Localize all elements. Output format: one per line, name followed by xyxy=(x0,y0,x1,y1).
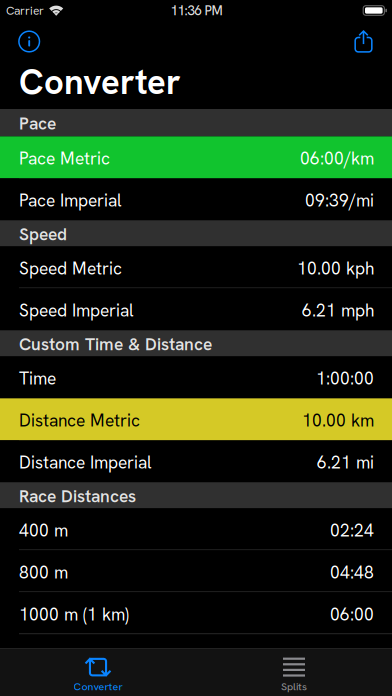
button[interactable]: Info xyxy=(7,21,51,62)
staticText: 10.00 km xyxy=(302,409,374,432)
staticText: 6.21 mph xyxy=(302,299,374,322)
staticText: Splits xyxy=(281,680,307,693)
staticText: Race Distances xyxy=(19,485,136,507)
staticText: 1000 m (1 km) xyxy=(19,603,129,626)
staticText: Distance Metric xyxy=(19,409,140,432)
button[interactable]: Pace Imperial xyxy=(0,178,392,220)
staticText: 11:36 PM xyxy=(170,2,222,19)
staticText: Time xyxy=(19,367,56,390)
staticText: 09:39/mi xyxy=(305,189,374,212)
staticText: Pace xyxy=(19,112,56,135)
button[interactable]: Converter xyxy=(0,649,196,696)
staticText: 06:00 xyxy=(330,603,374,626)
staticText: 10.00 kph xyxy=(297,257,374,280)
staticText: Converter xyxy=(73,680,122,693)
staticText: Custom Time & Distance xyxy=(19,333,212,355)
staticText: 800 m xyxy=(19,561,68,584)
button[interactable]: Splits xyxy=(196,649,392,696)
staticText: 02:24 xyxy=(330,519,374,542)
button[interactable]: Time xyxy=(0,356,392,398)
button[interactable]: Speed Metric xyxy=(0,246,392,288)
button[interactable]: Speed Imperial xyxy=(0,288,392,330)
staticText: Speed Metric xyxy=(19,257,122,280)
button[interactable]: Pace Metric xyxy=(0,136,392,178)
staticText: 6.21 mi xyxy=(317,451,374,474)
button[interactable]: 400 m xyxy=(0,508,392,550)
staticText: Pace Metric xyxy=(19,147,110,170)
staticText: Converter xyxy=(19,59,181,105)
button[interactable]: Distance Imperial xyxy=(0,440,392,482)
staticText: Pace Imperial xyxy=(19,189,122,212)
staticText: Speed xyxy=(19,223,67,245)
staticText: 06:00/km xyxy=(300,147,374,170)
button[interactable]: 1000 m (1 km) xyxy=(0,592,392,634)
button[interactable]: 800 m xyxy=(0,550,392,592)
staticText: Carrier xyxy=(6,3,44,18)
button[interactable]: Distance Metric xyxy=(0,398,392,440)
staticText: 1:00:00 xyxy=(316,367,374,390)
staticText: 04:48 xyxy=(330,561,374,584)
staticText: Distance Imperial xyxy=(19,451,152,474)
staticText: Speed Imperial xyxy=(19,299,134,322)
staticText: 400 m xyxy=(19,519,68,542)
button[interactable]: Share xyxy=(341,21,385,62)
